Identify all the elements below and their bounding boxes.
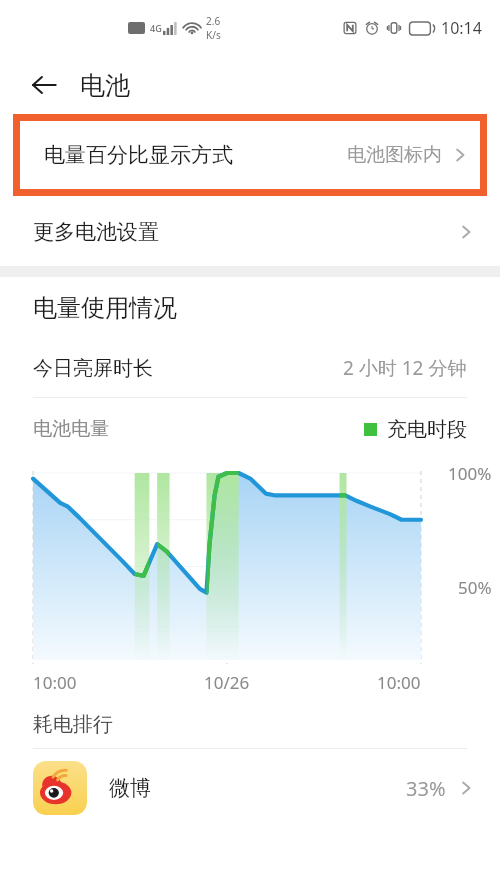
button[interactable]: 微博 [0, 749, 500, 827]
staticText: 2.6 [206, 14, 221, 28]
staticText: 33% [406, 775, 446, 802]
staticText: 更多电池设置 [33, 219, 159, 245]
staticText: 10:00 [33, 671, 77, 694]
staticText: 耗电排行 [33, 712, 113, 737]
staticText: 10:00 [377, 671, 421, 694]
staticText: 电池电量 [33, 417, 109, 441]
staticText: 今日亮屏时长 [33, 356, 153, 381]
staticText: 10:14 [441, 17, 482, 39]
staticText: 4G [150, 22, 162, 34]
staticText: 电量百分比显示方式 [44, 142, 233, 168]
staticText: 电量使用情况 [33, 293, 177, 323]
staticText: 10/26 [204, 671, 250, 694]
button[interactable]: Back [22, 63, 66, 107]
button[interactable]: 更多电池设置 [0, 198, 500, 266]
staticText: K/s [206, 28, 221, 42]
button[interactable]: 电量百分比显示方式 [20, 121, 480, 189]
staticText: 微博 [109, 775, 151, 801]
staticText: 50% [458, 576, 492, 599]
staticText: 2 小时 12 分钟 [343, 355, 467, 381]
staticText: 电池 [80, 70, 130, 101]
staticText: 电池图标内 [347, 143, 442, 167]
staticText: 100% [448, 462, 492, 485]
staticText: 充电时段 [387, 417, 467, 442]
